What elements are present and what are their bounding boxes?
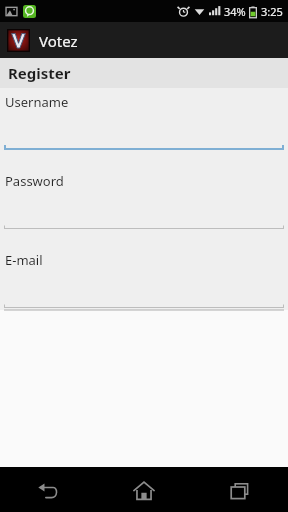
staticText: 3:25: [261, 4, 283, 19]
staticText: Username: [5, 93, 69, 111]
button[interactable]: Home: [96, 470, 192, 512]
staticText: Password: [5, 172, 64, 190]
staticText: E-mail: [5, 251, 43, 269]
staticText: Register: [8, 63, 71, 83]
button[interactable]: Recent apps: [192, 470, 288, 512]
staticText: 34%: [224, 4, 246, 19]
button[interactable]: Back: [0, 470, 96, 512]
staticText: Votez: [39, 31, 78, 51]
